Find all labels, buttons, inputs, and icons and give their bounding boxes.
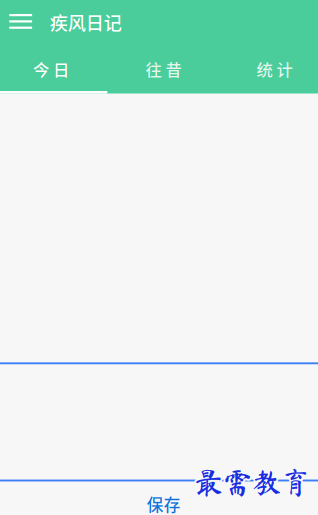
- staticText: 统 计: [256, 57, 292, 81]
- staticText: 最需教育: [193, 467, 309, 497]
- staticText: 今 日: [33, 57, 69, 81]
- button[interactable]: 保存: [132, 489, 196, 515]
- staticText: 最需教育: [194, 469, 310, 499]
- staticText: 最需教育: [192, 467, 308, 497]
- staticText: 最需教育: [192, 469, 308, 498]
- staticText: 疾风日记: [50, 9, 122, 35]
- staticText: 最需教育: [195, 467, 311, 497]
- staticText: 最需教育: [194, 466, 310, 496]
- button[interactable]: 往 昔: [106, 46, 212, 93]
- button[interactable]: 统 计: [212, 46, 318, 93]
- staticText: 最需教育: [195, 466, 311, 495]
- staticText: 最需教育: [194, 467, 310, 497]
- staticText: 最需教育: [192, 466, 308, 495]
- staticText: 保存: [147, 492, 181, 515]
- staticText: 往 昔: [146, 57, 182, 81]
- button[interactable]: Menu: [0, 5, 50, 41]
- staticText: 最需教育: [194, 468, 310, 498]
- staticText: 最需教育: [195, 469, 311, 498]
- button[interactable]: 今 日: [0, 46, 106, 93]
- staticText: 最需教育: [196, 467, 312, 497]
- staticText: 最需教育: [194, 465, 310, 495]
